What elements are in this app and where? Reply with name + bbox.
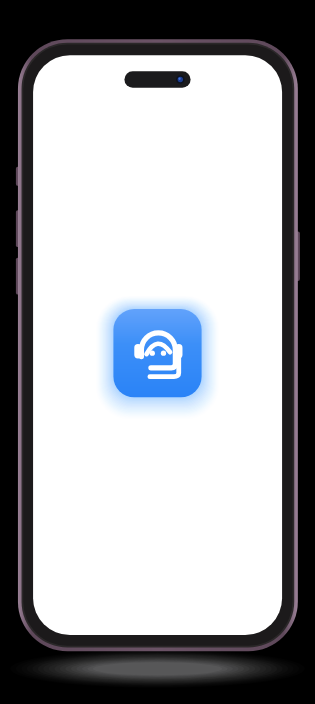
button[interactable]: Customer support app — [114, 308, 202, 396]
